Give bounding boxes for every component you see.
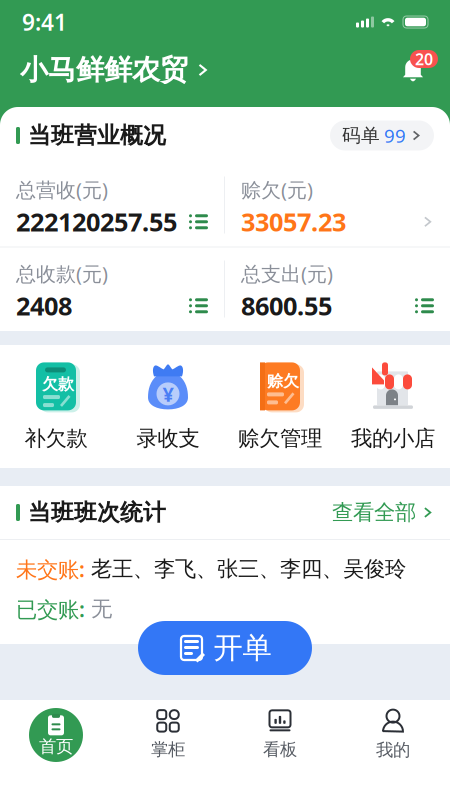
staticText: 我的小店 [351, 425, 435, 452]
button[interactable]: 总收款(元) [0, 247, 224, 330]
button[interactable]: 总支出(元) [225, 247, 450, 330]
staticText: 当班班次统计 [28, 499, 166, 526]
staticText: 222120257.55 [16, 205, 177, 239]
staticText: 当班营业概况 [28, 122, 166, 149]
staticText: 99 [384, 123, 406, 148]
staticText: 赊欠 [267, 371, 299, 391]
button[interactable]: 小马鲜鲜农贸 [20, 53, 210, 87]
staticText: 我的 [376, 739, 410, 761]
button[interactable]: 赊欠(元) [225, 163, 450, 246]
button[interactable]: 首页 [0, 700, 112, 770]
staticText: 总支出(元) [241, 260, 333, 287]
button[interactable]: 码单 [330, 120, 434, 150]
staticText: 补欠款 [24, 425, 87, 452]
button[interactable]: 我的小店 [336, 345, 450, 468]
staticText: 录收支 [136, 425, 199, 452]
staticText: 掌柜 [151, 739, 185, 760]
staticText: 小马鲜鲜农贸 [20, 53, 188, 87]
staticText: 赊欠(元) [241, 176, 313, 203]
staticText: 已交账: [16, 595, 85, 623]
button[interactable]: 我的 [336, 700, 450, 770]
button[interactable]: ¥ [112, 345, 224, 468]
staticText: 总营收(元) [16, 176, 108, 203]
button[interactable]: 掌柜 [112, 700, 224, 770]
staticText: 查看全部 [332, 499, 416, 526]
staticText: 欠款 [42, 374, 74, 394]
button[interactable]: 赊欠 [224, 345, 336, 468]
button[interactable]: 欠款 [0, 345, 112, 468]
staticText: 开单 [213, 630, 271, 666]
staticText: 老王、李飞、张三、李四、吴俊玲 [91, 556, 406, 582]
staticText: 码单 [342, 124, 380, 147]
staticText: 无 [91, 596, 112, 622]
staticText: 首页 [39, 736, 73, 757]
staticText: 33057.23 [241, 205, 346, 239]
staticText: 赊欠管理 [238, 425, 322, 452]
staticText: 总收款(元) [16, 260, 108, 287]
staticText: 20 [415, 48, 433, 70]
staticText: 看板 [263, 739, 297, 760]
button[interactable]: 查看全部 [332, 499, 434, 526]
button[interactable]: 总营收(元) [0, 163, 224, 246]
staticText: 2408 [16, 289, 72, 323]
staticText: 8600.55 [241, 289, 332, 323]
staticText: 未交账: [16, 555, 85, 583]
staticText: 9:41 [22, 7, 67, 37]
button[interactable]: 看板 [224, 700, 336, 770]
button[interactable]: Notifications [396, 55, 430, 85]
staticText: ¥ [162, 381, 173, 407]
button[interactable]: 开单 [138, 621, 312, 675]
